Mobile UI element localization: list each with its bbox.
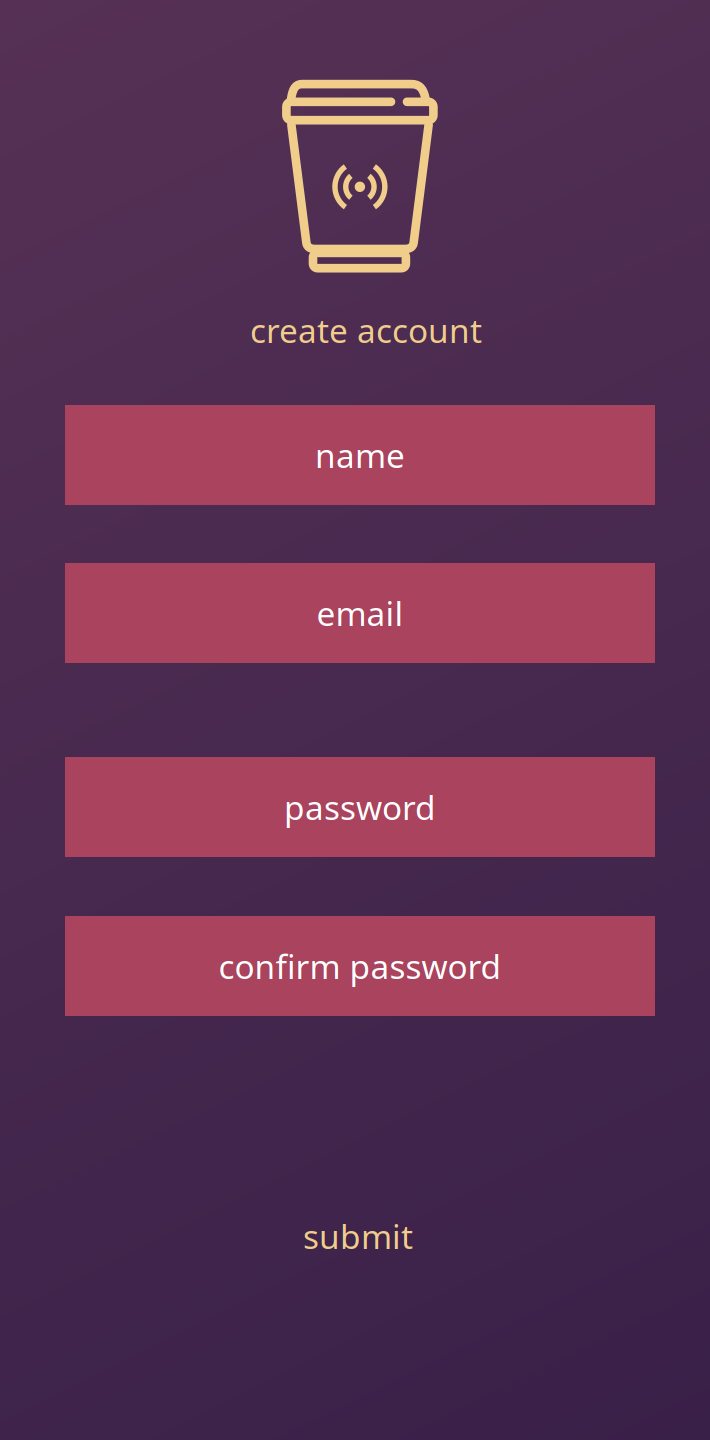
button[interactable]: submit — [248, 1204, 468, 1268]
button[interactable]: name — [65, 405, 655, 505]
staticText: password — [284, 785, 436, 829]
staticText: name — [315, 433, 405, 477]
staticText: create account — [250, 308, 482, 352]
button[interactable]: email — [65, 563, 655, 663]
staticText: confirm password — [218, 944, 501, 988]
staticText: submit — [303, 1214, 413, 1258]
staticText: email — [316, 591, 403, 635]
button[interactable]: password — [65, 757, 655, 857]
button[interactable]: confirm password — [65, 916, 655, 1016]
